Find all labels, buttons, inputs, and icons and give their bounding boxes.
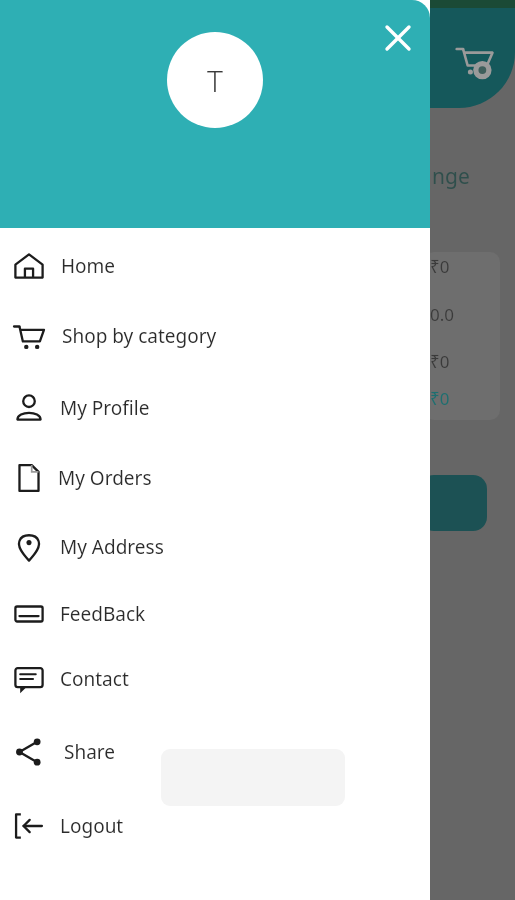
button[interactable]	[420, 475, 487, 531]
button[interactable]: My Profile	[0, 382, 430, 434]
button[interactable]: Logout	[0, 800, 430, 852]
button[interactable]: Cart	[452, 37, 498, 83]
button[interactable]: Share	[0, 726, 430, 778]
staticText: nge	[432, 162, 470, 191]
staticText: FeedBack	[60, 601, 146, 627]
button[interactable]: Shop by category	[0, 310, 430, 362]
staticText: My Orders	[58, 465, 152, 491]
staticText: Share	[64, 739, 116, 765]
staticText: ₹0	[430, 255, 450, 278]
button[interactable]: FeedBack	[0, 588, 430, 640]
staticText: Shop by category	[62, 323, 217, 349]
button[interactable]: My Orders	[0, 452, 430, 504]
staticText: Logout	[60, 813, 124, 839]
staticText: T	[207, 60, 223, 101]
button[interactable]: Contact	[0, 653, 430, 705]
button[interactable]: T	[167, 32, 263, 128]
staticText: ₹0	[430, 350, 450, 373]
button[interactable]: My Address	[0, 521, 430, 573]
staticText: Home	[61, 253, 116, 279]
button[interactable]: Home	[0, 240, 430, 292]
button[interactable]: Close	[378, 18, 418, 58]
staticText: ₹0	[430, 387, 450, 410]
staticText: Contact	[60, 666, 129, 692]
staticText: 0.0	[430, 303, 455, 326]
staticText: My Profile	[60, 395, 150, 421]
staticText: My Address	[60, 534, 164, 560]
